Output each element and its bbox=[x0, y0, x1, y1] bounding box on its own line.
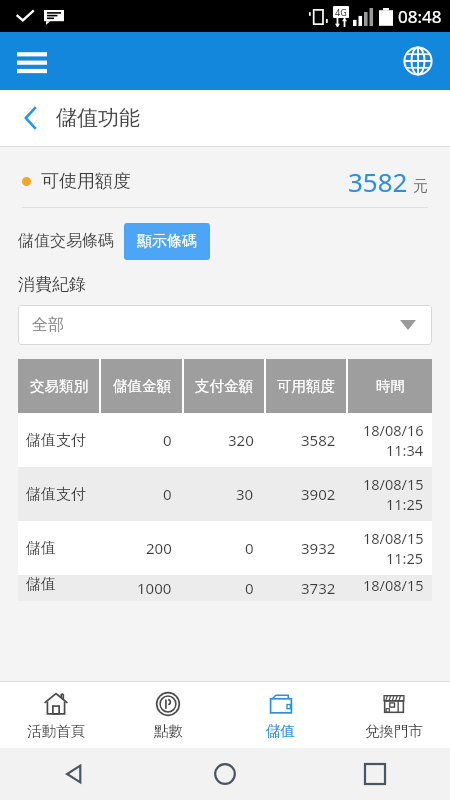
staticText: 18/08/15 bbox=[363, 575, 424, 595]
button[interactable]: Back bbox=[0, 748, 150, 800]
button[interactable]: 儲值 bbox=[18, 575, 432, 601]
staticText: 儲值支付 bbox=[26, 431, 86, 450]
button[interactable]: 儲值 bbox=[18, 521, 432, 575]
staticText: 3932 bbox=[301, 538, 336, 558]
staticText: 消費紀錄 bbox=[18, 274, 86, 295]
staticText: 0 bbox=[245, 538, 254, 558]
staticText: 儲值金額 bbox=[113, 377, 171, 395]
staticText: 08:48 bbox=[398, 5, 442, 28]
button[interactable]: 儲值 bbox=[224, 682, 337, 748]
staticText: 4G bbox=[335, 6, 347, 18]
staticText: 儲值 bbox=[26, 539, 56, 558]
staticText: 1000 bbox=[137, 578, 172, 598]
staticText: 3582 bbox=[348, 164, 408, 199]
staticText: 3902 bbox=[301, 484, 336, 504]
staticText: 儲值 bbox=[26, 575, 56, 594]
staticText: 兌換門市 bbox=[365, 722, 423, 740]
button[interactable]: 活動首頁 bbox=[0, 682, 112, 748]
button[interactable]: Recents bbox=[300, 748, 450, 800]
button[interactable]: Menu bbox=[8, 37, 56, 85]
button[interactable]: Back bbox=[14, 96, 48, 140]
button[interactable]: 儲值支付 bbox=[18, 413, 432, 467]
staticText: 點數 bbox=[154, 722, 183, 740]
staticText: 3732 bbox=[301, 578, 336, 598]
staticText: 顯示條碼 bbox=[137, 232, 197, 251]
staticText: 儲值交易條碼 bbox=[18, 231, 114, 251]
staticText: 可用額度 bbox=[277, 377, 335, 395]
button[interactable]: 顯示條碼 bbox=[124, 223, 210, 260]
button[interactable]: Home bbox=[150, 748, 300, 800]
staticText: 0 bbox=[163, 484, 172, 504]
staticText: 30 bbox=[236, 484, 254, 504]
button[interactable]: 儲值支付 bbox=[18, 467, 432, 521]
staticText: 11:34 bbox=[386, 440, 424, 460]
staticText: 可使用額度 bbox=[41, 170, 131, 193]
staticText: 0 bbox=[245, 578, 254, 598]
staticText: 時間 bbox=[376, 377, 405, 395]
button[interactable]: 點數 bbox=[112, 682, 224, 748]
staticText: 儲值支付 bbox=[26, 485, 86, 504]
staticText: 18/08/15 bbox=[363, 528, 424, 548]
staticText: 320 bbox=[228, 430, 254, 450]
button[interactable]: Language bbox=[396, 39, 440, 83]
staticText: 11:25 bbox=[386, 548, 424, 568]
staticText: 0 bbox=[163, 430, 172, 450]
staticText: 18/08/16 bbox=[363, 420, 424, 440]
staticText: 儲值 bbox=[266, 722, 295, 740]
staticText: 3582 bbox=[301, 430, 336, 450]
staticText: 活動首頁 bbox=[27, 722, 85, 740]
button[interactable]: 兌換門市 bbox=[337, 682, 450, 748]
staticText: 11:25 bbox=[386, 494, 424, 514]
staticText: 支付金額 bbox=[195, 377, 253, 395]
staticText: 200 bbox=[146, 538, 172, 558]
staticText: 全部 bbox=[32, 315, 64, 335]
staticText: 儲值功能 bbox=[56, 105, 140, 131]
staticText: 18/08/15 bbox=[363, 474, 424, 494]
staticText: 元 bbox=[413, 177, 428, 196]
staticText: 交易類別 bbox=[30, 377, 88, 395]
button[interactable]: 全部 bbox=[18, 305, 432, 345]
